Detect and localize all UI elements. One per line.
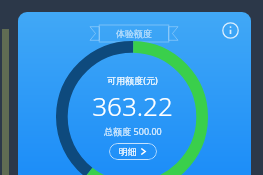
staticText: 明细	[119, 146, 137, 157]
staticText: 体验额度	[116, 28, 152, 39]
staticText: 363.22	[92, 88, 173, 123]
button[interactable]: 明细	[109, 143, 157, 160]
button[interactable]: Information	[219, 19, 241, 41]
staticText: 可用额度(元)	[107, 74, 158, 86]
staticText: 总额度 500.00	[104, 125, 162, 137]
